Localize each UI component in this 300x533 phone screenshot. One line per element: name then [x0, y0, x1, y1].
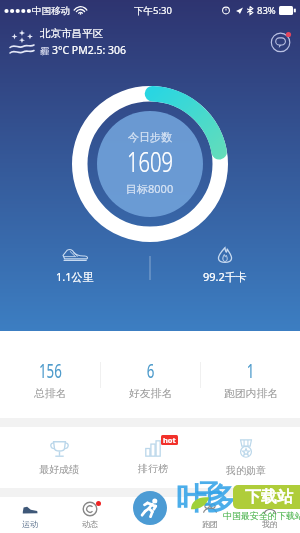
button[interactable]: 6 [101, 331, 200, 418]
staticText: 6 [147, 358, 154, 384]
staticText: 目标8000 [126, 181, 174, 196]
staticText: 1.1公里 [56, 269, 94, 284]
button[interactable]: 运动 [0, 497, 60, 533]
staticText: 今日步数 [128, 130, 172, 144]
staticText: 1 [247, 358, 254, 384]
staticText: 动态 [82, 519, 98, 529]
staticText: 跑团 [202, 519, 218, 529]
staticText: 下午5:30 [134, 4, 172, 17]
button[interactable]: 我的勋章 [199, 427, 292, 488]
staticText: 我的勋章 [226, 464, 266, 477]
staticText: 北京市昌平区 [40, 27, 103, 40]
staticText: 我的 [262, 519, 278, 529]
staticText: 83% [257, 4, 276, 17]
button[interactable]: 跑团 [180, 497, 240, 533]
staticText: 叶多 [176, 480, 236, 518]
button[interactable]: 1 [201, 331, 300, 418]
staticText: 总排名 [34, 387, 67, 401]
staticText: 跑团内排名 [224, 387, 278, 401]
staticText: 下载站 [245, 487, 293, 507]
button[interactable]: Start running [133, 491, 167, 525]
staticText: 156 [39, 358, 62, 384]
button[interactable]: 我的 [240, 497, 300, 533]
button[interactable]: hot [106, 427, 199, 488]
button[interactable]: Messages [270, 31, 292, 53]
staticText: 好友排名 [129, 387, 173, 401]
staticText: 霾 [40, 45, 49, 56]
staticText: 3°C PM2.5: 306 [52, 43, 127, 57]
button[interactable]: 156 [0, 331, 100, 418]
staticText: 99.2千卡 [203, 269, 247, 284]
staticText: 最好成绩 [39, 463, 79, 476]
staticText: 运动 [22, 519, 38, 529]
staticText: 排行榜 [138, 462, 168, 475]
staticText: 中国移动 [32, 5, 70, 17]
button[interactable]: 动态 [60, 497, 120, 533]
staticText: 中国最安全的下载站 [223, 510, 300, 521]
button[interactable]: 最好成绩 [12, 427, 106, 488]
staticText: 1609 [127, 142, 173, 180]
staticText: hot [163, 435, 176, 445]
staticText: 子 [196, 478, 222, 511]
